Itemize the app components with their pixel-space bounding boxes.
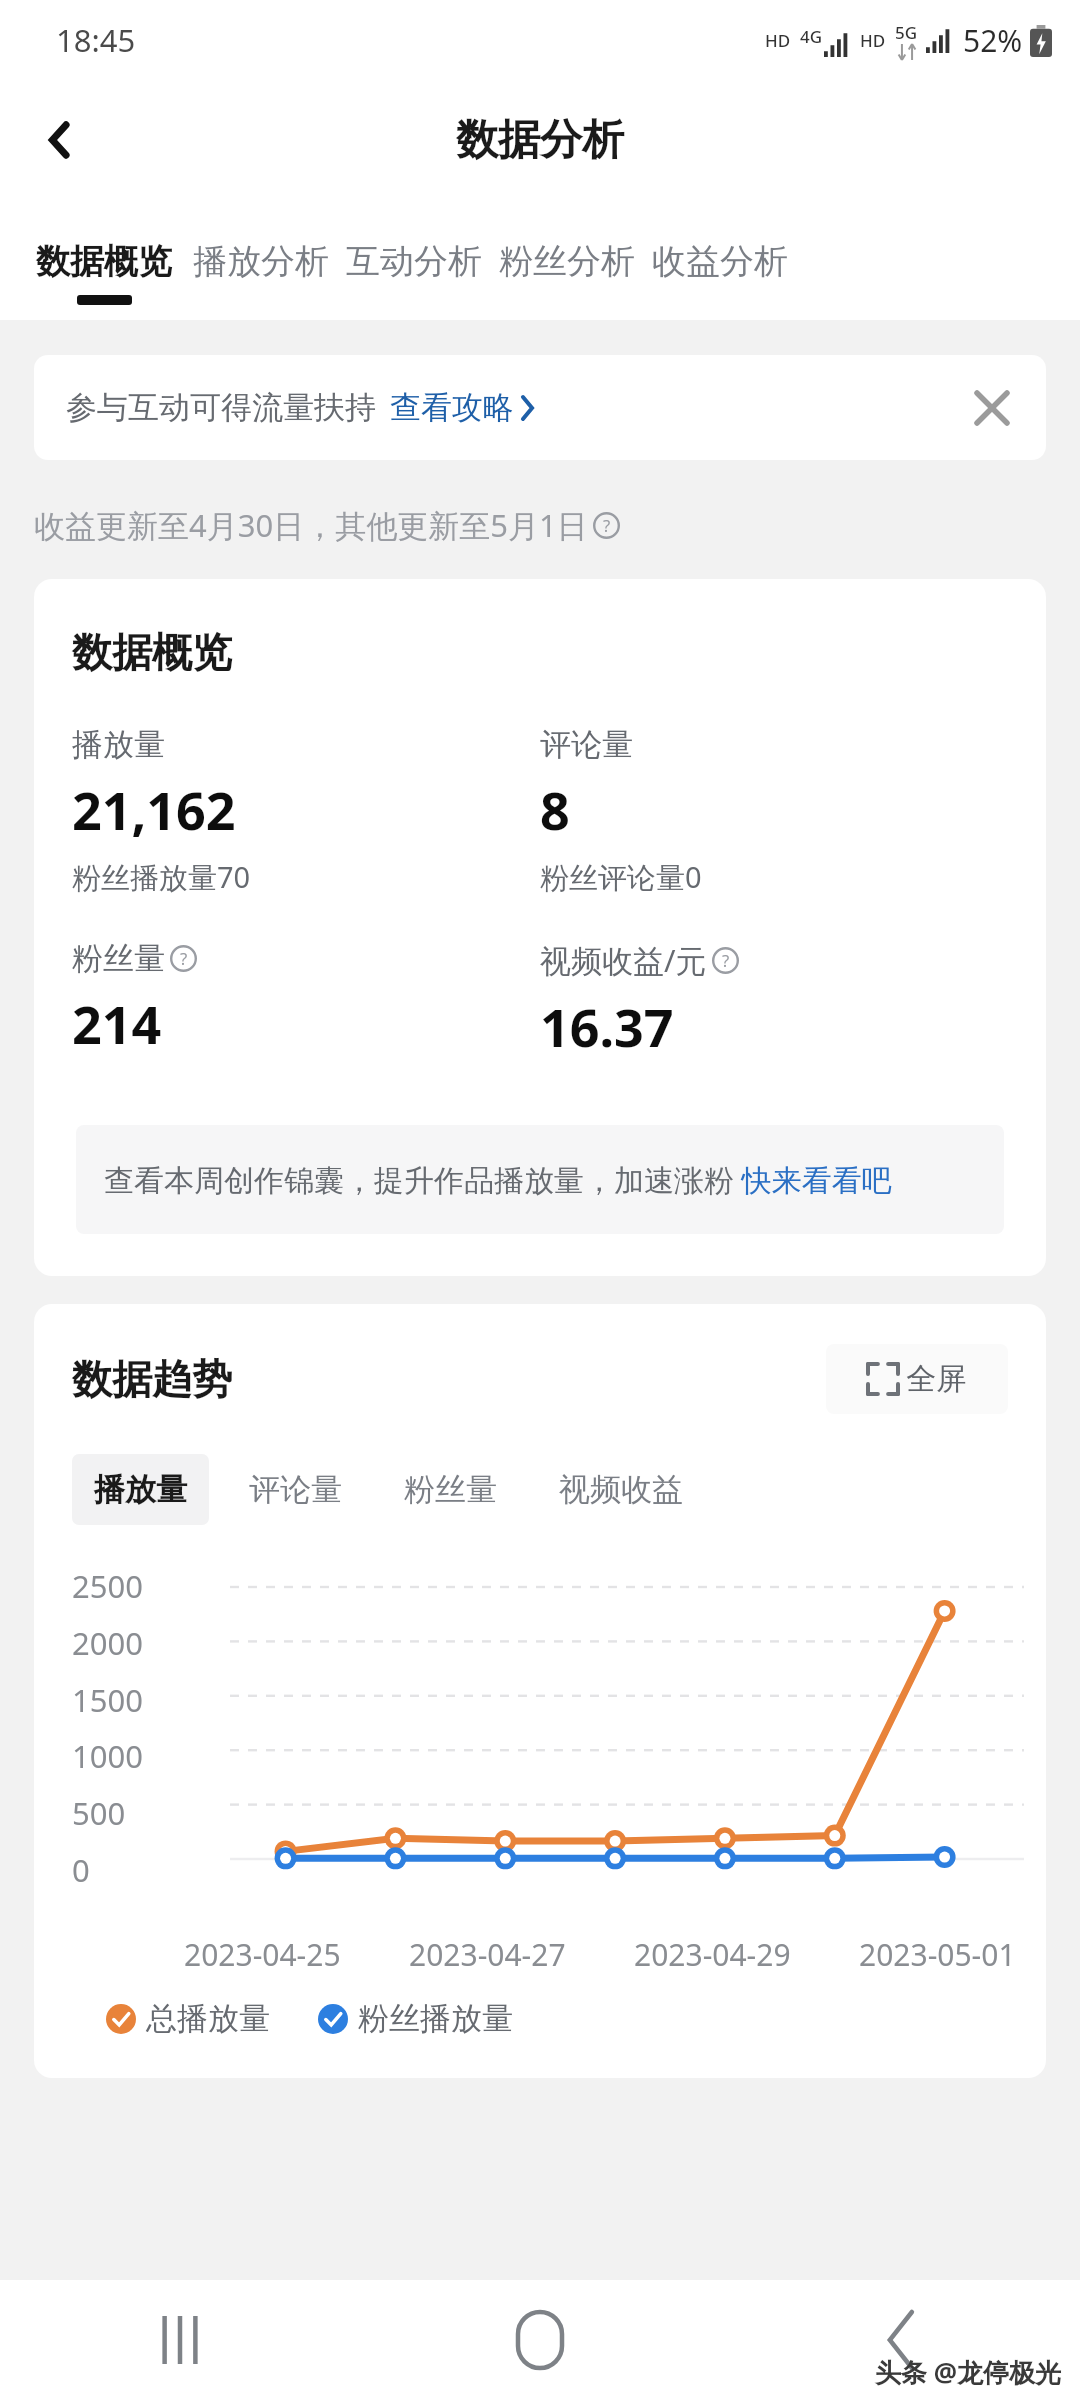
staticText: 粉丝播放量 bbox=[358, 1999, 513, 2038]
staticText: 5G bbox=[895, 21, 918, 44]
staticText: 头条 @龙停极光 bbox=[875, 2354, 1062, 2390]
button[interactable]: Close bbox=[963, 379, 1021, 437]
staticText: 参与互动可得流量扶持 bbox=[66, 388, 376, 427]
staticText: 0 bbox=[72, 1849, 194, 1891]
button[interactable]: 视频收益/元 bbox=[540, 939, 1046, 1062]
button[interactable]: 互动分析 bbox=[337, 200, 490, 310]
staticText: 播放量 bbox=[72, 725, 165, 764]
staticText: 视频收益/元 bbox=[540, 939, 707, 981]
staticText: 500 bbox=[72, 1792, 194, 1834]
staticText: 21,162 bbox=[72, 774, 236, 845]
button[interactable]: 收益分析 bbox=[643, 200, 796, 310]
staticText: 查看攻略 bbox=[390, 388, 514, 427]
staticText: 2023-04-25 bbox=[184, 1934, 341, 1975]
button[interactable]: 播放分析 bbox=[184, 200, 337, 310]
staticText: 播放分析 bbox=[193, 240, 329, 283]
button[interactable]: 播放量 bbox=[72, 725, 540, 897]
staticText: 粉丝评论量0 bbox=[540, 857, 702, 897]
button[interactable]: Home bbox=[360, 2280, 720, 2400]
staticText: ? bbox=[603, 514, 611, 537]
staticText: 2023-04-29 bbox=[634, 1934, 791, 1975]
staticText: 播放量 bbox=[94, 1470, 187, 1509]
staticText: ? bbox=[722, 949, 730, 972]
button[interactable]: Back bbox=[20, 100, 100, 180]
button[interactable]: 参与互动可得流量扶持 bbox=[34, 355, 1046, 460]
staticText: 互动分析 bbox=[346, 240, 482, 283]
staticText: 评论量 bbox=[540, 725, 633, 764]
button[interactable]: 总播放量 bbox=[106, 1999, 270, 2038]
staticText: 数据分析 bbox=[456, 114, 624, 167]
staticText: 粉丝分析 bbox=[499, 240, 635, 283]
staticText: 收益分析 bbox=[652, 240, 788, 283]
staticText: 18:45 bbox=[56, 19, 136, 61]
staticText: 8 bbox=[540, 774, 570, 845]
button[interactable]: Back bbox=[720, 2280, 1080, 2400]
staticText: 数据趋势 bbox=[72, 1354, 232, 1404]
button[interactable]: 播放量 bbox=[72, 1454, 209, 1525]
button[interactable]: 评论量 bbox=[540, 725, 1046, 897]
button[interactable]: 评论量 bbox=[227, 1454, 364, 1525]
staticText: 4G bbox=[800, 25, 823, 48]
staticText: 总播放量 bbox=[146, 1999, 270, 2038]
button[interactable]: 粉丝播放量 bbox=[318, 1999, 513, 2038]
button[interactable]: Recent apps bbox=[0, 2280, 360, 2400]
staticText: 数据概览 bbox=[36, 240, 172, 283]
staticText: 粉丝量 bbox=[404, 1470, 497, 1509]
staticText: 粉丝量 bbox=[72, 939, 165, 978]
button[interactable]: 粉丝量 bbox=[382, 1454, 519, 1525]
staticText: 评论量 bbox=[249, 1470, 342, 1509]
staticText: 粉丝播放量70 bbox=[72, 857, 251, 897]
staticText: 214 bbox=[72, 988, 162, 1059]
staticText: 数据概览 bbox=[72, 627, 232, 677]
staticText: 16.37 bbox=[540, 991, 674, 1062]
staticText: 全屏 bbox=[906, 1360, 966, 1398]
staticText: 1500 bbox=[72, 1679, 194, 1721]
button[interactable]: 视频收益 bbox=[537, 1454, 705, 1525]
button[interactable]: 数据概览 bbox=[24, 200, 184, 310]
button[interactable]: 粉丝分析 bbox=[490, 200, 643, 310]
staticText: 2023-04-27 bbox=[409, 1934, 566, 1975]
staticText: 2500 bbox=[72, 1565, 194, 1607]
button[interactable]: 全屏 bbox=[826, 1344, 1008, 1414]
staticText: 视频收益 bbox=[559, 1470, 683, 1509]
staticText: ? bbox=[180, 947, 188, 970]
staticText: 2000 bbox=[72, 1622, 194, 1664]
button[interactable]: 粉丝量 bbox=[72, 939, 540, 1059]
button[interactable]: 查看本周创作锦囊，提升作品播放量，加速涨粉 快来看看吧 bbox=[76, 1125, 1004, 1234]
staticText: 52% bbox=[963, 20, 1023, 61]
staticText: HD bbox=[765, 29, 791, 52]
staticText: 收益更新至4月30日，其他更新至5月1日 bbox=[34, 504, 588, 546]
staticText: 查看本周创作锦囊，提升作品播放量，加速涨粉 快来看看吧 bbox=[104, 1159, 892, 1200]
staticText: 2023-05-01 bbox=[859, 1934, 1016, 1975]
staticText: HD bbox=[860, 29, 886, 52]
staticText: 1000 bbox=[72, 1735, 194, 1777]
